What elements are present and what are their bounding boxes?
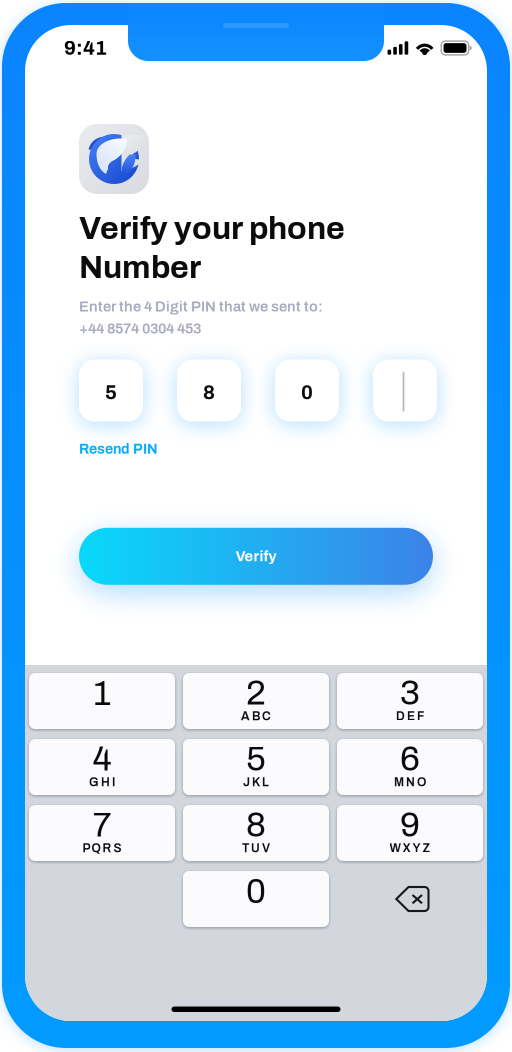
staticText: 0 [246, 873, 266, 910]
staticText: Number [79, 250, 201, 285]
button[interactable]: 8 [183, 805, 329, 861]
button[interactable]: 5 [183, 739, 329, 795]
button[interactable]: 4 [29, 739, 175, 795]
button[interactable]: Resend PIN [79, 421, 158, 460]
button[interactable]: 3 [337, 673, 483, 729]
staticText: 8 [203, 382, 215, 403]
button[interactable]: Verify [79, 528, 433, 585]
staticText: 9:41 [64, 37, 107, 59]
staticText: 5 [246, 740, 266, 778]
button[interactable]: 7 [29, 805, 175, 861]
staticText: Verify your phone [79, 211, 345, 246]
staticText: J K L [243, 776, 269, 789]
button[interactable]: 6 [337, 739, 483, 795]
staticText: T U V [242, 842, 270, 855]
staticText: +44 8574 0304 453 [79, 321, 201, 337]
staticText: D E F [396, 710, 424, 723]
staticText: W X Y Z [389, 842, 430, 855]
button[interactable]: 8 [177, 359, 241, 421]
staticText: P Q R S [82, 842, 121, 855]
staticText: 6 [400, 740, 420, 778]
button[interactable]: 0 [275, 359, 339, 421]
staticText: 8 [246, 806, 266, 844]
staticText: 9 [400, 806, 420, 844]
staticText: 3 [400, 674, 420, 712]
button[interactable]: 5 [79, 359, 143, 421]
staticText: Resend PIN [79, 441, 158, 457]
staticText: 0 [301, 382, 313, 403]
button[interactable]: 0 [183, 871, 329, 927]
staticText: Enter the 4 Digit PIN that we sent to: [79, 299, 323, 315]
staticText: 4 [92, 740, 111, 778]
staticText: Verify [235, 548, 276, 564]
staticText: A B C [241, 710, 271, 723]
staticText: G H I [89, 776, 115, 789]
button[interactable] [373, 359, 437, 421]
staticText: 2 [246, 674, 266, 712]
button[interactable]: 9 [337, 805, 483, 861]
staticText: 1 [93, 675, 111, 712]
button[interactable]: 1 [29, 673, 175, 729]
staticText: M N O [394, 776, 426, 789]
staticText: 7 [92, 806, 111, 844]
button[interactable]: Delete [337, 871, 483, 927]
button[interactable]: 2 [183, 673, 329, 729]
staticText: 5 [105, 382, 117, 403]
